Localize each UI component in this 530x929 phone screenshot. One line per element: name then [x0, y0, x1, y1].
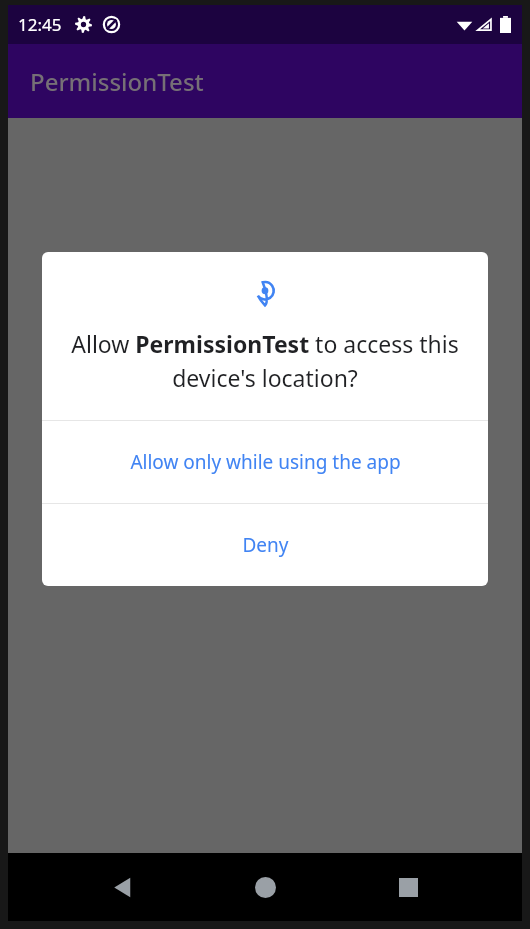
staticText: Deny: [242, 532, 289, 558]
staticText: 12:45: [18, 13, 62, 36]
button[interactable]: Allow only while using the app: [42, 421, 488, 503]
staticText: PermissionTest: [30, 65, 204, 98]
button[interactable]: Deny: [42, 504, 488, 586]
staticText: Allow only while using the app: [130, 449, 401, 475]
button[interactable]: Home: [237, 859, 293, 915]
button[interactable]: Back: [95, 859, 151, 915]
button[interactable]: Recent apps: [380, 859, 436, 915]
staticText: Allow PermissionTest to access this devi…: [68, 328, 462, 393]
